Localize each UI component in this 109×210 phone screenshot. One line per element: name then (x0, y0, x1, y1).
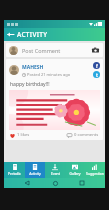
staticText: Post Comment (22, 47, 61, 54)
button[interactable]: Activity (25, 162, 45, 178)
button[interactable]: Post Comment (6, 43, 103, 57)
staticText: Suggestion (86, 171, 104, 176)
staticText: 1 likes (17, 132, 30, 138)
button[interactable]: Gallery (65, 162, 85, 178)
button[interactable]: 0 comments (67, 132, 99, 138)
button[interactable]: 1 likes (10, 132, 30, 138)
staticText: happy birthday!!! (10, 81, 50, 88)
button[interactable]: Birthday greeting image (9, 90, 100, 130)
staticText: Activity (29, 171, 41, 176)
staticText: Event (51, 171, 60, 176)
staticText: t (96, 72, 98, 78)
staticText: 0 comments (74, 132, 99, 138)
button[interactable]: Periodic (4, 162, 25, 178)
staticText: Posted 21 minutes ago (27, 72, 71, 77)
button[interactable]: Home (50, 178, 60, 188)
button[interactable]: Event (45, 162, 65, 178)
button[interactable]: Suggestion (85, 162, 105, 178)
staticText: Periodic (8, 171, 21, 176)
button[interactable]: Back (4, 28, 17, 41)
staticText: f (96, 63, 98, 69)
button[interactable]: Share on Facebook (93, 62, 100, 69)
button[interactable]: Share on Twitter (93, 71, 100, 78)
staticText: Gallery (69, 171, 81, 176)
button[interactable]: Back (22, 178, 32, 188)
staticText: ACTIVITY (17, 30, 48, 39)
button[interactable]: Recent apps (77, 178, 87, 188)
staticText: MAHESH (22, 64, 44, 71)
button[interactable]: Attach photo (90, 45, 100, 55)
